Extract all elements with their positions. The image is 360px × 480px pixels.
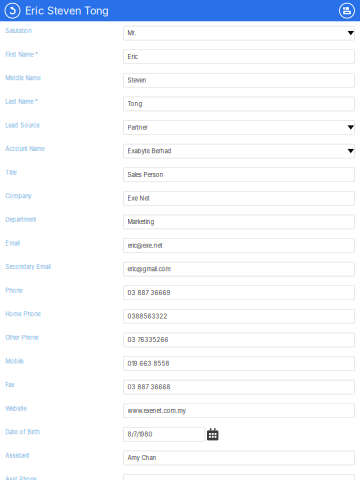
staticText: Exabyte Berhad bbox=[127, 147, 171, 155]
staticText: Tong bbox=[127, 100, 142, 108]
staticText: Marketing bbox=[127, 218, 154, 226]
staticText: 03 887 36669 bbox=[127, 289, 170, 296]
staticText: * bbox=[35, 98, 38, 105]
button[interactable]: Eric bbox=[123, 50, 354, 64]
staticText: * bbox=[35, 51, 38, 58]
staticText: Company bbox=[5, 193, 31, 200]
staticText: 0388563322 bbox=[127, 313, 167, 320]
button[interactable]: Sales Person bbox=[123, 168, 354, 182]
button[interactable]: Pick date bbox=[205, 428, 222, 440]
button[interactable]: Amy Chan bbox=[123, 451, 354, 465]
button[interactable]: Mr. bbox=[123, 26, 354, 40]
staticText: Salutation bbox=[5, 27, 31, 34]
staticText: Website bbox=[5, 405, 26, 412]
staticText: Title bbox=[5, 169, 16, 176]
staticText: Exe Net bbox=[127, 195, 149, 202]
staticText: Lead Source bbox=[5, 122, 39, 129]
staticText: 03 887 36668 bbox=[127, 383, 170, 391]
staticText: Amy Chan bbox=[127, 454, 156, 462]
staticText: Date of Birth bbox=[5, 429, 39, 436]
button[interactable]: Save bbox=[334, 3, 360, 18]
button[interactable]: Back bbox=[0, 3, 25, 18]
staticText: 8/7/1980 bbox=[127, 431, 152, 438]
staticText: Assistant bbox=[5, 452, 29, 459]
staticText: 03 76335266 bbox=[127, 336, 168, 344]
staticText: Eric bbox=[127, 53, 137, 60]
button[interactable] bbox=[123, 474, 354, 480]
button[interactable]: Partner bbox=[123, 120, 354, 134]
staticText: Eric Steven Tong bbox=[25, 4, 109, 17]
button[interactable]: eric@gmail.com bbox=[123, 262, 354, 276]
button[interactable]: Tong bbox=[123, 97, 354, 111]
button[interactable]: www.exenet.com.my bbox=[123, 404, 354, 418]
staticText: Mobile bbox=[5, 358, 23, 365]
staticText: 019 663 8558 bbox=[127, 360, 169, 367]
button[interactable]: Exe Net bbox=[123, 191, 354, 205]
staticText: Account Name bbox=[5, 145, 44, 152]
staticText: eric@exe.net bbox=[127, 242, 162, 249]
staticText: Home Phone bbox=[5, 311, 40, 318]
button[interactable]: 03 887 36669 bbox=[123, 286, 354, 300]
button[interactable]: 8/7/1980 bbox=[123, 427, 205, 441]
button[interactable]: 03 887 36668 bbox=[123, 380, 354, 394]
staticText: First Name bbox=[5, 51, 33, 58]
staticText: Department bbox=[5, 216, 36, 223]
staticText: Mr. bbox=[127, 29, 136, 37]
staticText: www.exenet.com.my bbox=[127, 407, 185, 414]
staticText: Phone bbox=[5, 287, 22, 294]
staticText: Partner bbox=[127, 124, 147, 131]
button[interactable]: eric@exe.net bbox=[123, 238, 354, 252]
staticText: Steven bbox=[127, 77, 146, 84]
staticText: eric@gmail.com bbox=[127, 265, 170, 273]
staticText: Sales Person bbox=[127, 171, 163, 178]
staticText: Secondary Email bbox=[5, 263, 50, 270]
staticText: Last Name bbox=[5, 98, 33, 105]
button[interactable]: Steven bbox=[123, 73, 354, 87]
button[interactable]: 0388563322 bbox=[123, 309, 354, 323]
staticText: Asst Phone bbox=[5, 476, 36, 480]
staticText: Email bbox=[5, 240, 19, 247]
button[interactable]: 03 76335266 bbox=[123, 333, 354, 347]
staticText: Middle Name bbox=[5, 75, 40, 82]
staticText: Other Phone bbox=[5, 334, 38, 341]
staticText: Fax bbox=[5, 381, 14, 388]
button[interactable]: 019 663 8558 bbox=[123, 356, 354, 370]
button[interactable]: Exabyte Berhad bbox=[123, 144, 354, 158]
button[interactable]: Marketing bbox=[123, 215, 354, 229]
